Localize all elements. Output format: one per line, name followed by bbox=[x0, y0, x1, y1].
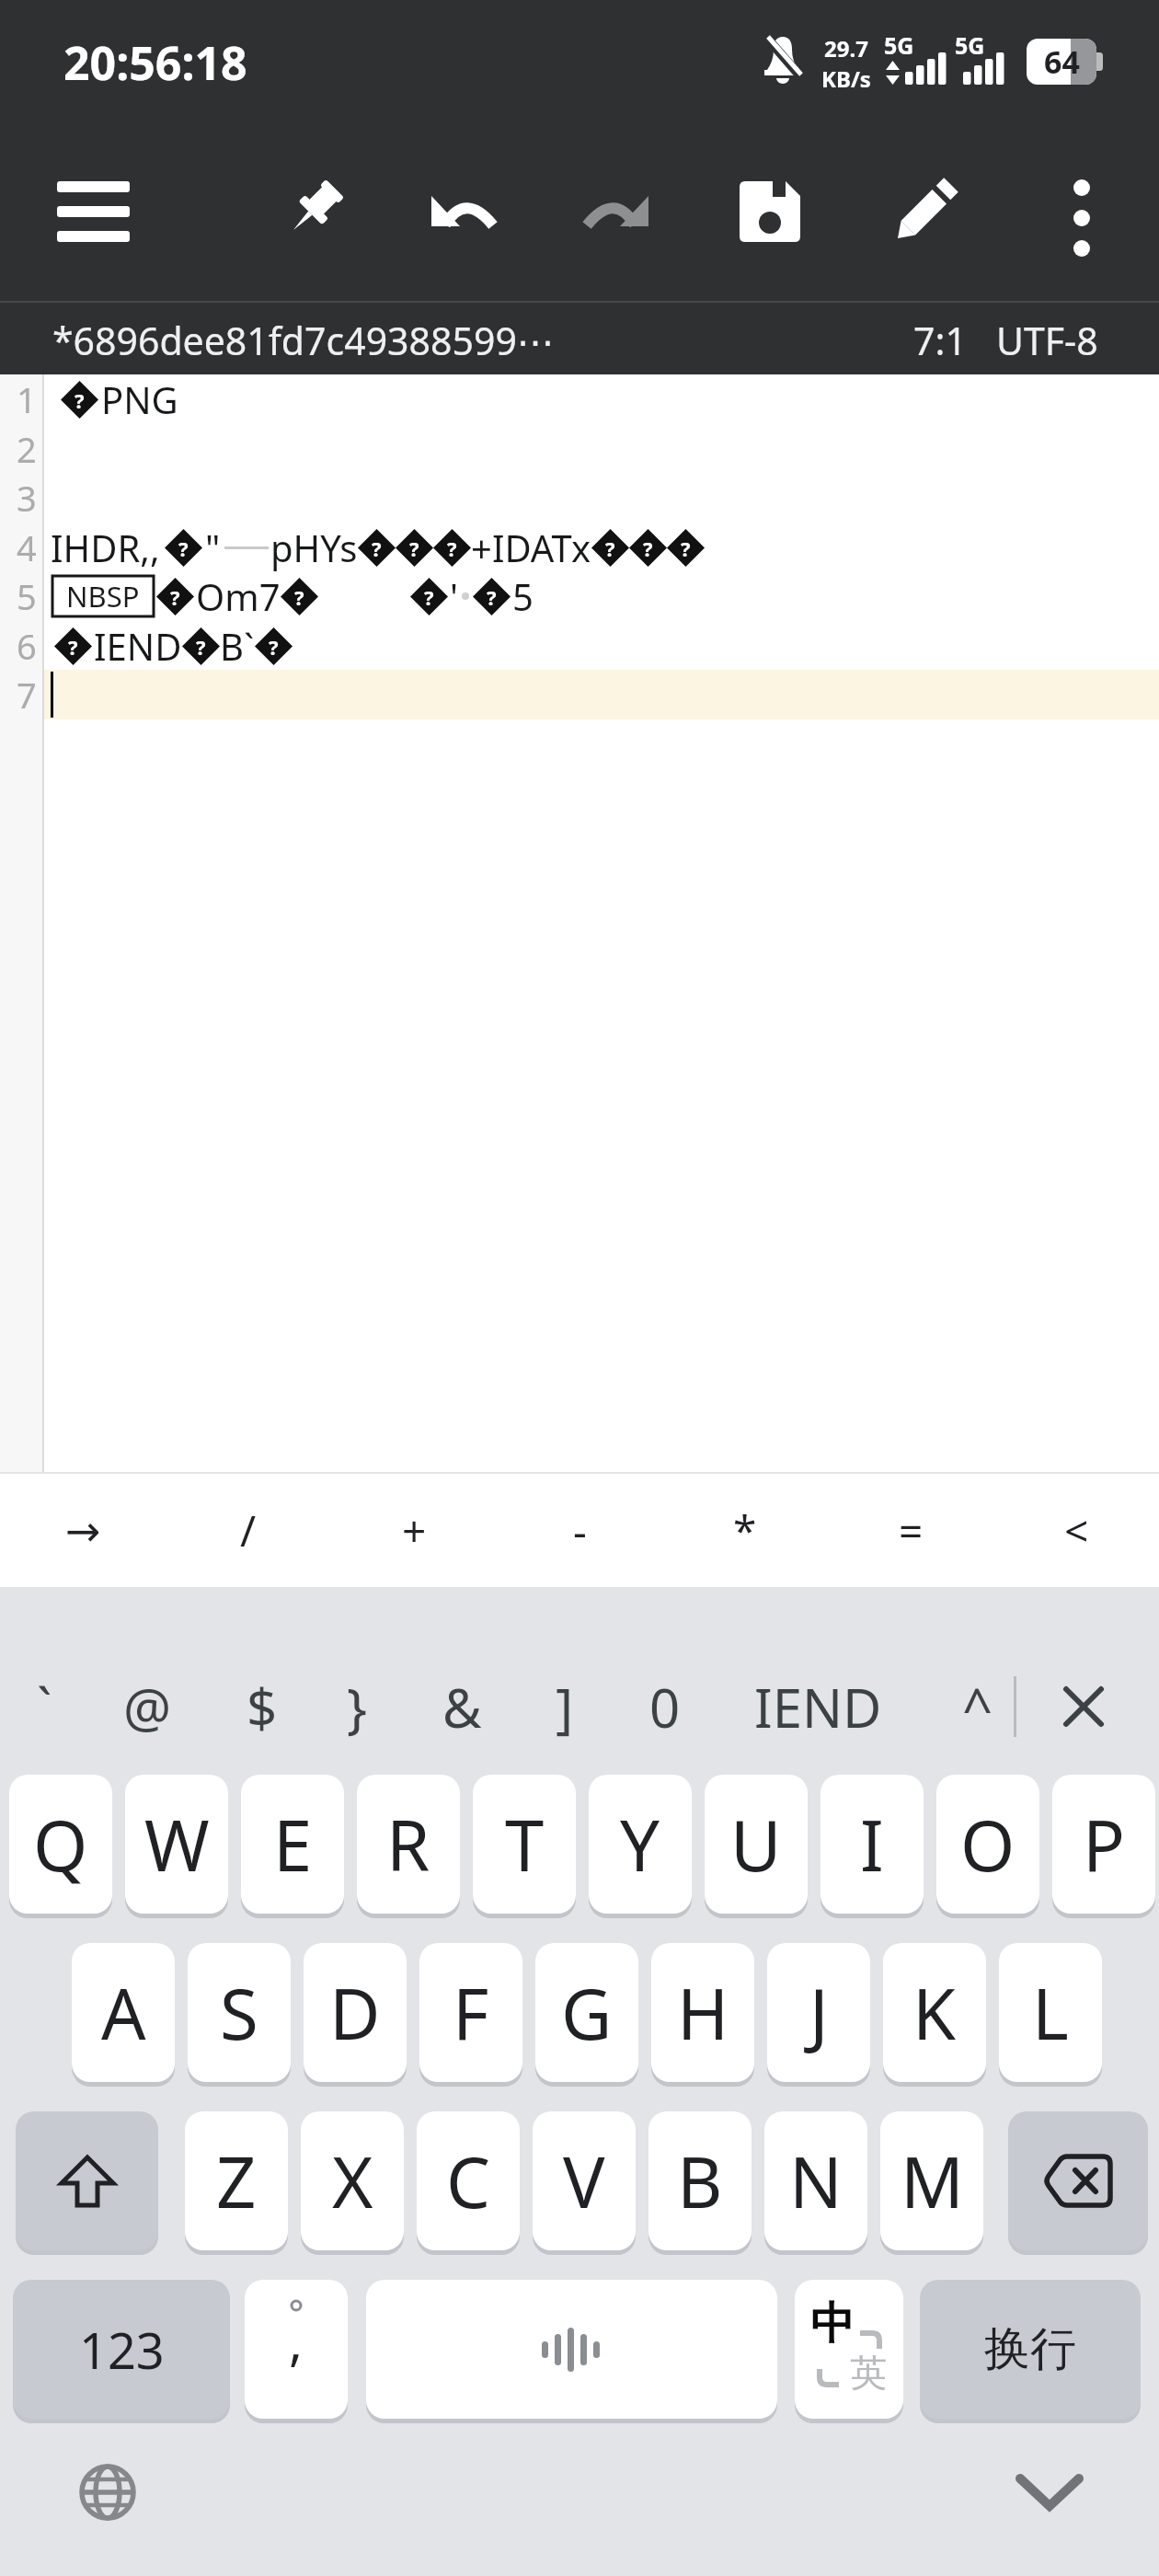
staticText: ? bbox=[424, 583, 434, 611]
button[interactable] bbox=[76, 2461, 139, 2524]
staticText: = bbox=[899, 1501, 924, 1559]
staticText: 3 bbox=[17, 474, 37, 522]
staticText: U bbox=[730, 1797, 782, 1892]
button[interactable]: P bbox=[1052, 1775, 1155, 1914]
button[interactable]: W bbox=[125, 1775, 228, 1914]
button[interactable]: 中 bbox=[795, 2280, 903, 2419]
staticText: T bbox=[505, 1797, 545, 1892]
button[interactable]: 123 bbox=[13, 2280, 230, 2419]
button[interactable]: ^ bbox=[913, 1647, 1042, 1766]
button[interactable]: 0 bbox=[601, 1647, 729, 1766]
button[interactable]: F bbox=[419, 1943, 522, 2082]
button[interactable] bbox=[275, 177, 347, 248]
staticText: 64 bbox=[1044, 40, 1080, 83]
button[interactable]: M bbox=[880, 2111, 983, 2250]
staticText: ' bbox=[450, 571, 458, 621]
staticText: ? bbox=[605, 535, 615, 562]
button[interactable]: ] bbox=[500, 1647, 629, 1766]
button[interactable]: D bbox=[304, 1943, 407, 2082]
button[interactable]: - bbox=[497, 1474, 662, 1587]
button[interactable]: T bbox=[473, 1775, 576, 1914]
button[interactable]: 换行 bbox=[920, 2280, 1141, 2419]
button[interactable]: * bbox=[662, 1474, 828, 1587]
staticText: - bbox=[573, 1501, 587, 1559]
staticText: S bbox=[220, 1965, 258, 2061]
button[interactable]: U bbox=[705, 1775, 808, 1914]
button[interactable]: Y bbox=[589, 1775, 692, 1914]
staticText: A bbox=[101, 1965, 146, 2061]
staticText: H bbox=[677, 1965, 729, 2061]
button[interactable]: B bbox=[648, 2111, 752, 2250]
staticText: Y bbox=[620, 1797, 660, 1892]
staticText: IHDR,, bbox=[51, 523, 160, 572]
staticText: 2 bbox=[17, 425, 37, 473]
button[interactable]: = bbox=[828, 1474, 993, 1587]
button[interactable]: < bbox=[993, 1474, 1159, 1587]
button[interactable] bbox=[583, 193, 651, 230]
staticText: ? bbox=[178, 535, 189, 562]
staticText: / bbox=[240, 1501, 257, 1559]
button[interactable]: N bbox=[764, 2111, 867, 2250]
button[interactable]: L bbox=[999, 1943, 1102, 2082]
button[interactable] bbox=[889, 181, 959, 242]
staticText: + bbox=[402, 1501, 427, 1559]
button[interactable]: X bbox=[301, 2111, 404, 2250]
staticText: PNG bbox=[101, 374, 178, 424]
button[interactable] bbox=[1065, 179, 1098, 259]
button[interactable] bbox=[16, 2111, 158, 2250]
staticText: C bbox=[446, 2133, 491, 2229]
button[interactable] bbox=[429, 193, 497, 230]
button[interactable] bbox=[1008, 2111, 1148, 2250]
staticText: } bbox=[347, 1671, 368, 1743]
button[interactable]: V bbox=[533, 2111, 636, 2250]
button[interactable]: + bbox=[331, 1474, 497, 1587]
button[interactable]: K bbox=[883, 1943, 986, 2082]
staticText: ` bbox=[37, 1671, 52, 1743]
button[interactable]: & bbox=[397, 1647, 526, 1766]
staticText: KB/s bbox=[821, 63, 871, 94]
button[interactable]: C bbox=[417, 2111, 520, 2250]
button[interactable]: , bbox=[245, 2280, 348, 2419]
button[interactable]: E bbox=[241, 1775, 344, 1914]
button[interactable] bbox=[740, 181, 800, 242]
button[interactable] bbox=[366, 2280, 777, 2419]
button[interactable]: O bbox=[936, 1775, 1039, 1914]
staticText: W bbox=[144, 1797, 210, 1892]
staticText: M bbox=[901, 2133, 964, 2229]
staticText: 20:56:18 bbox=[63, 31, 247, 94]
staticText: & bbox=[442, 1671, 482, 1743]
button[interactable]: @ bbox=[83, 1647, 212, 1766]
button[interactable]: } bbox=[293, 1647, 421, 1766]
button[interactable]: Z bbox=[185, 2111, 288, 2250]
button[interactable]: J bbox=[767, 1943, 870, 2082]
button[interactable]: A bbox=[72, 1943, 175, 2082]
button[interactable] bbox=[1016, 2466, 1083, 2521]
button[interactable]: $ bbox=[198, 1647, 327, 1766]
staticText: B bbox=[677, 2133, 723, 2229]
staticText: 5G bbox=[884, 29, 914, 61]
staticText: 29.7 bbox=[824, 33, 868, 63]
staticText: 123 bbox=[79, 2316, 165, 2384]
staticText: @ bbox=[123, 1671, 172, 1743]
button[interactable]: S bbox=[188, 1943, 291, 2082]
button[interactable]: H bbox=[651, 1943, 754, 2082]
staticText: 4 bbox=[17, 523, 37, 571]
button[interactable] bbox=[1049, 1647, 1119, 1766]
staticText: B` bbox=[220, 621, 255, 671]
button[interactable]: ` bbox=[0, 1647, 109, 1766]
staticText: " bbox=[205, 523, 221, 572]
staticText: R bbox=[386, 1797, 430, 1892]
staticText: *6896dee81fd7c49388599⋯ bbox=[52, 315, 555, 366]
button[interactable]: / bbox=[166, 1474, 331, 1587]
button[interactable]: R bbox=[357, 1775, 460, 1914]
staticText: IEND bbox=[754, 1671, 882, 1743]
staticText: ] bbox=[556, 1671, 574, 1743]
button[interactable]: IEND bbox=[753, 1647, 882, 1766]
button[interactable]: Q bbox=[9, 1775, 112, 1914]
button[interactable]: G bbox=[535, 1943, 638, 2082]
staticText: Om7 bbox=[196, 571, 281, 621]
button[interactable]: I bbox=[820, 1775, 924, 1914]
staticText: 6 bbox=[17, 622, 37, 670]
button[interactable] bbox=[57, 181, 130, 242]
button[interactable]: → bbox=[0, 1474, 166, 1587]
